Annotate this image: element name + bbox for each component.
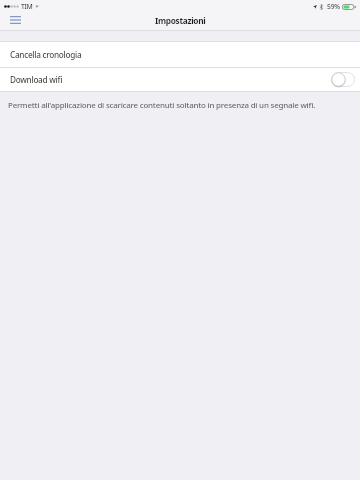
button[interactable]: Download wifi [0, 68, 360, 91]
button[interactable]: Download wifi [331, 72, 355, 87]
staticText: Impostazioni [155, 15, 206, 26]
button[interactable]: Menu [0, 12, 26, 31]
staticText: TIM [21, 2, 33, 11]
staticText: 59% [327, 2, 340, 11]
staticText: Download wifi [10, 74, 63, 85]
button[interactable]: Cancella cronologia [0, 42, 360, 67]
staticText: Cancella cronologia [10, 49, 82, 60]
staticText: Permetti all'applicazione di scaricare c… [8, 100, 316, 111]
